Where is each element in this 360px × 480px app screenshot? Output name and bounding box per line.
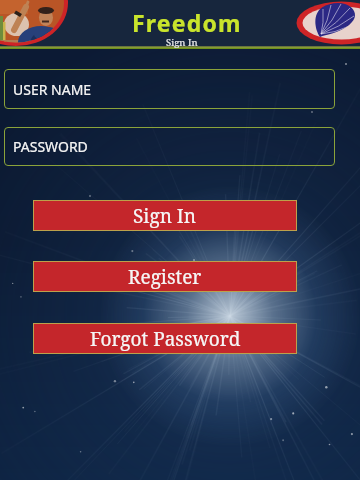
button[interactable]: Forgot Password xyxy=(33,323,297,354)
staticText: Sign In xyxy=(133,203,197,229)
staticText: USER NAME xyxy=(13,80,92,99)
button[interactable]: Sign In xyxy=(33,200,297,231)
button[interactable]: Register xyxy=(33,261,297,292)
staticText: Register xyxy=(128,264,202,290)
button[interactable]: PASSWORD xyxy=(4,127,335,166)
staticText: PASSWORD xyxy=(13,137,88,156)
button[interactable]: USER NAME xyxy=(4,69,335,109)
staticText: Freedom xyxy=(132,7,242,38)
staticText: Forgot Password xyxy=(90,326,241,352)
staticText: Sign In xyxy=(166,36,198,49)
